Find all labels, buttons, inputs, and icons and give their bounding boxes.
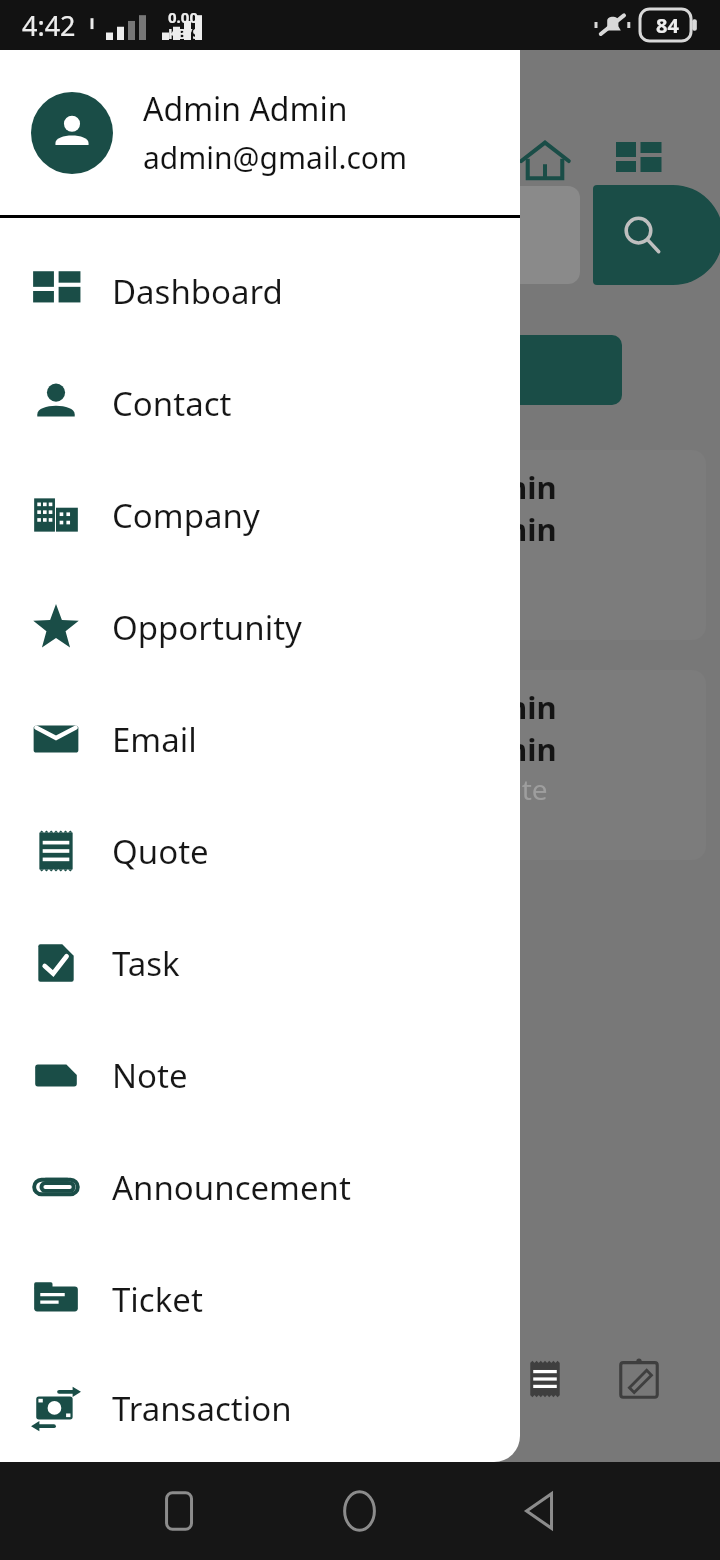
- staticText: Note: [112, 1053, 188, 1098]
- button[interactable]: Admin Admin: [0, 50, 520, 215]
- button[interactable]: Admin: [436, 450, 706, 640]
- button[interactable]: Note: [0, 1019, 520, 1131]
- staticText: Task: [112, 941, 180, 986]
- button[interactable]: Contact: [0, 347, 520, 459]
- button[interactable]: Dashboard: [613, 136, 663, 186]
- button[interactable]: Announcement: [0, 1131, 520, 1243]
- button[interactable]: Task: [0, 907, 520, 1019]
- staticText: Admin: [456, 466, 557, 508]
- staticText: Admin: [456, 686, 557, 728]
- button[interactable]: Back: [516, 1487, 564, 1535]
- button[interactable]: Transaction: [0, 1355, 520, 1462]
- staticText: Dashboard: [112, 269, 283, 314]
- button[interactable]: Quote: [522, 1356, 568, 1402]
- button[interactable]: Dashboard: [0, 235, 520, 347]
- button[interactable]: Home: [518, 134, 572, 188]
- button[interactable]: Search: [593, 185, 720, 285]
- staticText: Quote: [112, 829, 209, 874]
- staticText: Email: [112, 717, 197, 762]
- button[interactable]: Company: [0, 459, 520, 571]
- staticText: Admin: [456, 728, 557, 770]
- button[interactable]: Admin: [436, 670, 706, 860]
- button[interactable]: Recents: [156, 1487, 204, 1535]
- button[interactable]: Quote: [0, 795, 520, 907]
- staticText: 84: [656, 12, 679, 39]
- staticText: 4:42: [22, 7, 76, 44]
- button[interactable]: [430, 335, 622, 405]
- button[interactable]: Email: [0, 683, 520, 795]
- button[interactable]: [470, 186, 580, 284]
- staticText: 0.00: [168, 7, 198, 27]
- button[interactable]: Ticket: [0, 1243, 520, 1355]
- staticText: Transaction: [112, 1386, 292, 1431]
- staticText: Admin: [456, 508, 557, 550]
- staticText: admin@gmail.com: [143, 137, 408, 178]
- button[interactable]: Task: [615, 1355, 663, 1403]
- staticText: Admin Admin: [143, 87, 348, 131]
- staticText: Announcement: [112, 1165, 351, 1210]
- staticText: Contact: [112, 381, 232, 426]
- staticText: KB/S: [168, 24, 201, 43]
- button[interactable]: Home: [336, 1487, 384, 1535]
- staticText: Private: [456, 770, 548, 808]
- staticText: Company: [112, 493, 260, 538]
- staticText: Opportunity: [112, 605, 302, 650]
- staticText: Ticket: [112, 1277, 203, 1322]
- button[interactable]: Opportunity: [0, 571, 520, 683]
